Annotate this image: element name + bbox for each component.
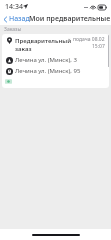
staticText: Лечина ул. (Минск), 95 <box>15 67 81 75</box>
staticText: 15:07 <box>92 43 105 50</box>
button[interactable]: Назад <box>0 13 33 25</box>
staticText: Назад <box>9 14 30 24</box>
staticText: 14:34 <box>5 2 23 12</box>
staticText: Заказы <box>4 26 22 33</box>
staticText: подача 08.02 <box>73 36 105 43</box>
staticText: Предварительный заказ <box>15 37 73 53</box>
button[interactable]: Предварительный заказ <box>2 34 109 88</box>
staticText: Лечина ул. (Минск), 3 <box>15 56 77 64</box>
staticText: Мои предварительные <box>29 14 111 24</box>
